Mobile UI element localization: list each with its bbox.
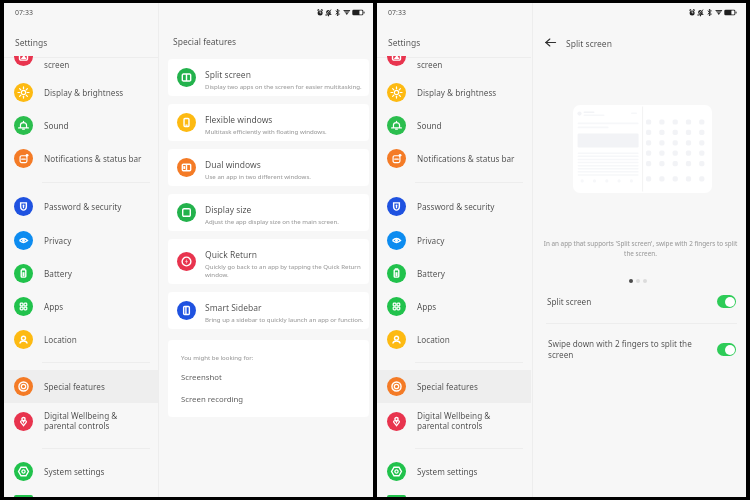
- staticText: Special features: [173, 36, 237, 48]
- button[interactable]: Special features: [4, 370, 158, 403]
- staticText: Adjust the app display size on the main …: [205, 217, 339, 225]
- staticText: 07:33: [388, 8, 406, 18]
- button[interactable]: Password & security: [4, 190, 158, 223]
- staticText: Split screen: [205, 69, 251, 81]
- button[interactable]: Battery: [377, 257, 531, 290]
- staticText: Use an app in two different windows.: [205, 172, 311, 180]
- staticText: Screen recording: [181, 394, 244, 405]
- staticText: You might be looking for:: [181, 353, 254, 361]
- button[interactable]: Dual windows: [168, 149, 369, 186]
- staticText: Location: [417, 334, 450, 345]
- staticText: Quickly go back to an app by tapping the…: [205, 262, 367, 279]
- staticText: Apps: [44, 301, 64, 312]
- staticText: Display two apps on the screen for easie…: [205, 82, 362, 90]
- button[interactable]: Split screen: [168, 59, 369, 96]
- button[interactable]: Battery: [4, 257, 158, 290]
- staticText: Apps: [417, 301, 437, 312]
- staticText: Smart Sidebar: [205, 302, 262, 314]
- staticText: Digital Wellbeing & parental controls: [44, 410, 118, 432]
- staticText: System settings: [417, 466, 478, 477]
- staticText: System settings: [44, 466, 105, 477]
- button[interactable]: Toggle: [717, 343, 736, 356]
- staticText: Privacy: [44, 235, 72, 246]
- button[interactable]: System settings: [4, 455, 158, 488]
- staticText: Display & brightness: [44, 87, 124, 98]
- button[interactable]: Toggle: [717, 295, 736, 308]
- button[interactable]: Digital Wellbeing & parental controls: [377, 401, 531, 441]
- staticText: Sound: [44, 120, 69, 131]
- staticText: screen: [44, 59, 70, 70]
- button[interactable]: Smart Sidebar: [168, 292, 369, 329]
- staticText: Display & brightness: [417, 87, 497, 98]
- staticText: Flexible windows: [205, 114, 273, 126]
- button[interactable]: Display size: [168, 194, 369, 231]
- staticText: Privacy: [417, 235, 445, 246]
- button[interactable]: Privacy: [4, 224, 158, 257]
- staticText: Notifications & status bar: [44, 153, 142, 164]
- staticText: Split screen: [566, 38, 612, 50]
- staticText: Notifications & status bar: [417, 153, 515, 164]
- staticText: Location: [44, 334, 77, 345]
- staticText: Dual windows: [205, 159, 261, 171]
- button[interactable]: Password & security: [377, 190, 531, 223]
- button[interactable]: Apps: [4, 290, 158, 323]
- button[interactable]: Location: [4, 323, 158, 356]
- button[interactable]: Screenshot: [168, 367, 369, 388]
- staticText: 07:33: [15, 8, 33, 18]
- button[interactable]: Notifications & status bar: [4, 142, 158, 175]
- staticText: Display size: [205, 204, 252, 216]
- button[interactable]: Screen recording: [168, 389, 369, 410]
- button[interactable]: Apps: [377, 290, 531, 323]
- button[interactable]: Sound: [4, 109, 158, 142]
- staticText: Settings: [15, 37, 48, 49]
- staticText: Special features: [417, 381, 478, 392]
- button[interactable]: Special features: [377, 370, 531, 403]
- staticText: Battery: [417, 268, 446, 279]
- button[interactable]: Quick Return: [168, 239, 369, 284]
- staticText: Sound: [417, 120, 442, 131]
- button[interactable]: Flexible windows: [168, 104, 369, 141]
- staticText: Battery: [44, 268, 73, 279]
- button[interactable]: System settings: [377, 455, 531, 488]
- staticText: In an app that supports 'Split screen', …: [541, 239, 740, 258]
- button[interactable]: Location: [377, 323, 531, 356]
- button[interactable]: Swipe down with 2 fingers to split the s…: [533, 331, 746, 367]
- button[interactable]: Digital Wellbeing & parental controls: [4, 401, 158, 441]
- staticText: Quick Return: [205, 249, 258, 261]
- staticText: Settings: [388, 37, 421, 49]
- button[interactable]: Display & brightness: [4, 76, 158, 109]
- button[interactable]: Sound: [377, 109, 531, 142]
- button[interactable]: Display & brightness: [377, 76, 531, 109]
- staticText: Split screen: [547, 296, 592, 307]
- staticText: Password & security: [417, 201, 495, 212]
- button[interactable]: Split screen: [533, 287, 746, 316]
- staticText: Digital Wellbeing & parental controls: [417, 410, 491, 432]
- button[interactable]: Notifications & status bar: [377, 142, 531, 175]
- staticText: screen: [417, 59, 443, 70]
- staticText: Password & security: [44, 201, 122, 212]
- staticText: Special features: [44, 381, 105, 392]
- staticText: Multitask efficiently with floating wind…: [205, 127, 327, 135]
- button[interactable]: Privacy: [377, 224, 531, 257]
- button[interactable]: Back: [538, 30, 563, 55]
- staticText: Swipe down with 2 fingers to split the s…: [548, 338, 692, 360]
- staticText: Bring up a sidebar to quickly launch an …: [205, 315, 364, 323]
- staticText: Screenshot: [181, 372, 222, 383]
